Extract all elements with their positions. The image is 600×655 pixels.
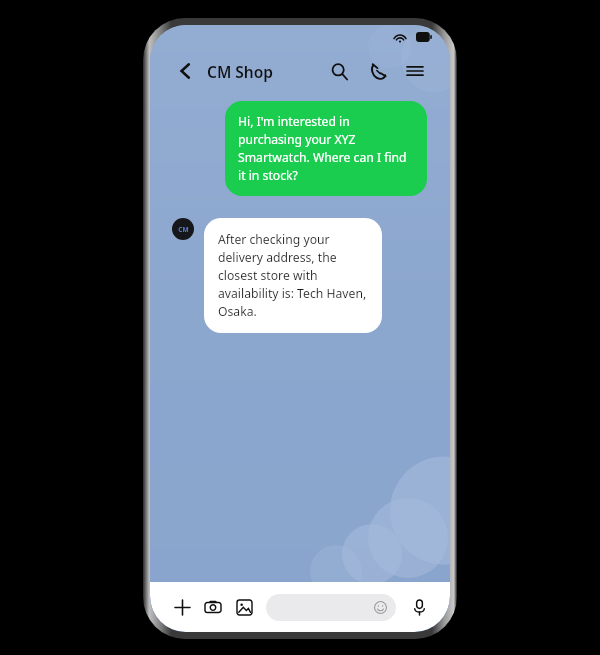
button[interactable]: Back bbox=[176, 61, 196, 81]
button[interactable]: Message input bbox=[266, 594, 396, 621]
button[interactable]: Voice message bbox=[408, 596, 430, 618]
button[interactable]: Menu bbox=[402, 58, 428, 84]
staticText: Hi, I'm interested in purchasing your XY… bbox=[238, 113, 414, 184]
staticText: After checking your delivery address, th… bbox=[218, 231, 368, 320]
button[interactable]: Camera bbox=[202, 596, 224, 618]
staticText: CM bbox=[178, 225, 189, 234]
button[interactable]: CM Shop avatar bbox=[172, 218, 194, 240]
button[interactable]: Add attachment bbox=[171, 596, 193, 618]
button[interactable]: Hi, I'm interested in purchasing your XY… bbox=[225, 101, 427, 196]
button[interactable]: After checking your delivery address, th… bbox=[204, 218, 382, 333]
button[interactable]: Gallery bbox=[233, 596, 255, 618]
staticText: CM Shop bbox=[207, 61, 273, 82]
button[interactable]: Search bbox=[326, 58, 352, 84]
button[interactable]: Call bbox=[364, 58, 390, 84]
